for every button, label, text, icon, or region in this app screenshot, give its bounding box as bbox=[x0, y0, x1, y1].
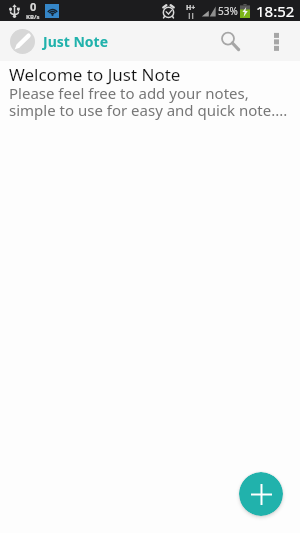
staticText: Just Note bbox=[43, 32, 109, 51]
staticText: 53% bbox=[218, 4, 238, 18]
button[interactable]: Add note bbox=[239, 472, 283, 516]
staticText: 0 bbox=[30, 0, 37, 14]
staticText: KB/s bbox=[26, 13, 40, 19]
staticText: Please feel free to add your notes, simp… bbox=[9, 83, 288, 121]
staticText: 18:52 bbox=[256, 1, 295, 21]
button[interactable]: More options bbox=[264, 29, 288, 53]
staticText: H+ bbox=[186, 3, 196, 13]
button[interactable]: Search bbox=[214, 25, 246, 57]
staticText: Welcome to Just Note bbox=[9, 63, 181, 86]
